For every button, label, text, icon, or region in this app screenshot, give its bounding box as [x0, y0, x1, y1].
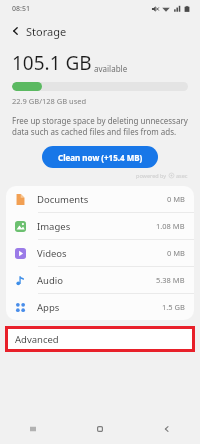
button[interactable]: Videos — [6, 240, 194, 266]
staticText: Storage — [26, 24, 67, 39]
button[interactable]: Recents — [0, 414, 66, 444]
staticText: 0 MB — [167, 194, 185, 204]
staticText: 0 MB — [167, 248, 185, 258]
staticText: Apps — [37, 301, 162, 314]
staticText: available — [94, 63, 128, 74]
button[interactable]: Clean now (+15.4 MB) — [42, 146, 158, 168]
button[interactable]: Home — [66, 414, 133, 444]
staticText: asec — [176, 172, 188, 179]
staticText: Free up storage space by deleting unnece… — [12, 115, 188, 137]
staticText: powered by — [136, 172, 167, 179]
staticText: Videos — [37, 247, 167, 260]
staticText: Advanced — [15, 333, 59, 346]
staticText: Audio — [37, 274, 156, 287]
button[interactable]: Back — [8, 23, 24, 39]
staticText: 22.9 GB/128 GB used — [12, 96, 87, 106]
button[interactable]: Back — [133, 414, 200, 444]
staticText: Documents — [37, 193, 167, 206]
staticText: 08:51 — [12, 4, 30, 14]
button[interactable]: Apps — [6, 294, 194, 320]
staticText: Clean now (+15.4 MB) — [58, 152, 143, 163]
staticText: Images — [37, 220, 156, 233]
staticText: 1.08 MB — [156, 221, 185, 231]
staticText: 5.38 MB — [156, 275, 185, 285]
staticText: 1.5 GB — [162, 302, 185, 312]
staticText: 105.1 GB — [12, 50, 92, 76]
button[interactable]: Documents — [6, 186, 194, 212]
button[interactable]: Audio — [6, 267, 194, 293]
button[interactable]: Images — [6, 213, 194, 239]
button[interactable]: Advanced — [8, 329, 192, 349]
